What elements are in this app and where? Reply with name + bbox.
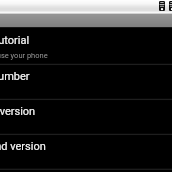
- other: Battery: [169, 1, 172, 11]
- button[interactable]: Mobile tutorial: [0, 27, 172, 64]
- staticText: Baseband version: [0, 140, 47, 153]
- staticText: Android version: [0, 105, 36, 118]
- button[interactable]: Baseband version: [0, 134, 172, 169]
- button[interactable]: Android version: [0, 99, 172, 134]
- staticText: Mobile tutorial: [0, 34, 30, 47]
- button[interactable]: Model number: [0, 64, 172, 99]
- staticText: Learn how to use your phone: [0, 51, 48, 60]
- staticText: Model number: [0, 70, 30, 83]
- other: Vibrate mode: [159, 1, 165, 11]
